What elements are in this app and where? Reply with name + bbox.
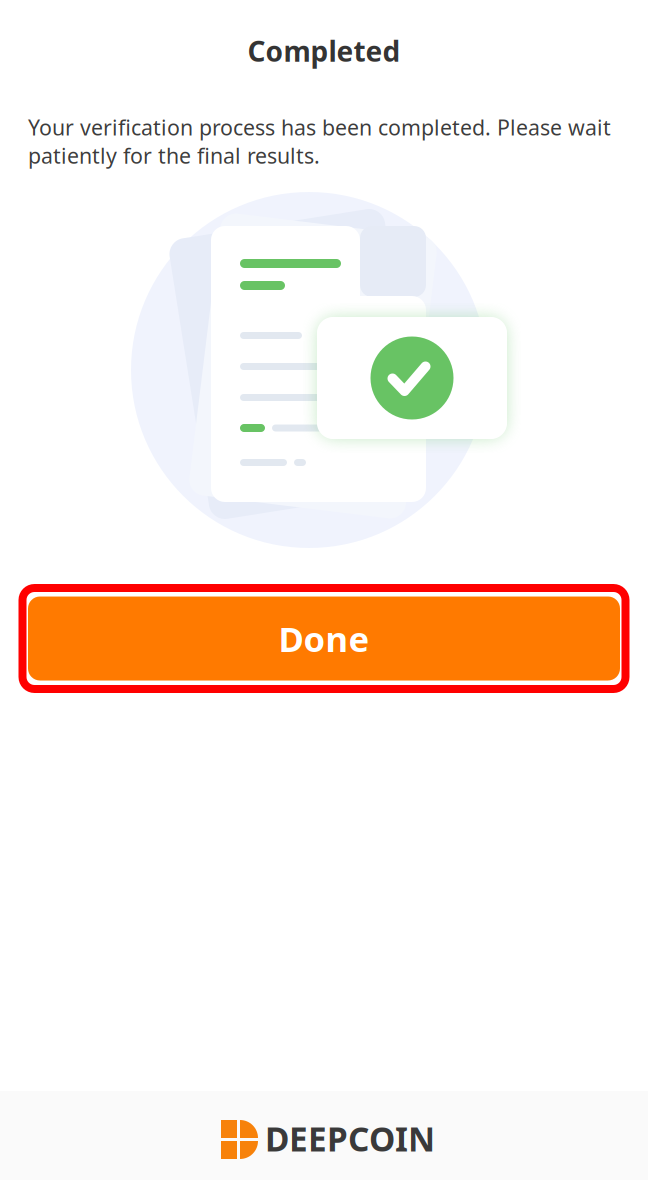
staticText: DEEPCOIN xyxy=(265,1116,435,1161)
staticText: Your verification process has been compl… xyxy=(28,113,611,170)
button[interactable]: Done xyxy=(28,596,620,680)
staticText: Completed xyxy=(247,32,400,70)
staticText: Done xyxy=(278,615,369,661)
